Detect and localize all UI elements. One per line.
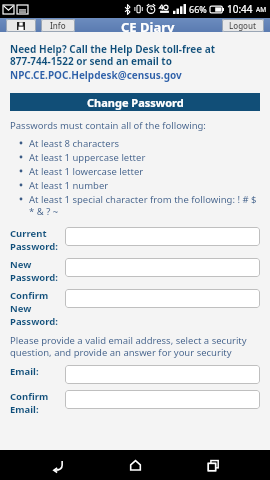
button[interactable]: [65, 390, 260, 409]
staticText: Password:: [10, 240, 58, 253]
staticText: Confirm: [10, 289, 49, 302]
staticText: New: [10, 302, 32, 315]
staticText: At least 1 uppercase letter: [29, 151, 146, 164]
button[interactable]: Back: [38, 450, 78, 480]
button[interactable]: Save: [6, 19, 36, 32]
staticText: Change Password: [87, 95, 184, 110]
staticText: Passwords must contain all of the follow…: [10, 119, 206, 132]
staticText: Info: [50, 20, 66, 31]
staticText: Current: [10, 227, 47, 240]
button[interactable]: [65, 227, 260, 246]
staticText: At least 1 special character from the fo…: [29, 193, 260, 218]
staticText: Password:: [10, 271, 58, 284]
staticText: Email:: [10, 403, 39, 416]
staticText: 10:44: [227, 2, 253, 16]
button[interactable]: Info: [41, 19, 75, 32]
button[interactable]: Logout: [222, 19, 264, 32]
staticText: New: [10, 258, 32, 271]
button[interactable]: Home: [115, 450, 155, 480]
staticText: At least 8 characters: [29, 137, 120, 150]
button[interactable]: NPC.CE.POC.Helpdesk@census.gov: [10, 68, 182, 82]
staticText: Password:: [10, 315, 58, 328]
staticText: Logout: [229, 20, 257, 31]
button[interactable]: [65, 258, 260, 277]
staticText: 66%: [189, 3, 207, 15]
staticText: At least 1 number: [29, 179, 109, 192]
staticText: Please provide a valid email address, se…: [10, 334, 260, 359]
staticText: Email:: [10, 365, 39, 378]
staticText: At least 1 lowercase letter: [29, 165, 144, 178]
button[interactable]: [65, 365, 260, 384]
staticText: Need Help? Call the Help Desk toll-free …: [10, 42, 260, 68]
staticText: Confirm: [10, 390, 49, 403]
staticText: AM: [256, 5, 267, 14]
button[interactable]: Recent apps: [193, 450, 233, 480]
staticText: CE Diary: [121, 18, 175, 32]
button[interactable]: [65, 289, 260, 308]
